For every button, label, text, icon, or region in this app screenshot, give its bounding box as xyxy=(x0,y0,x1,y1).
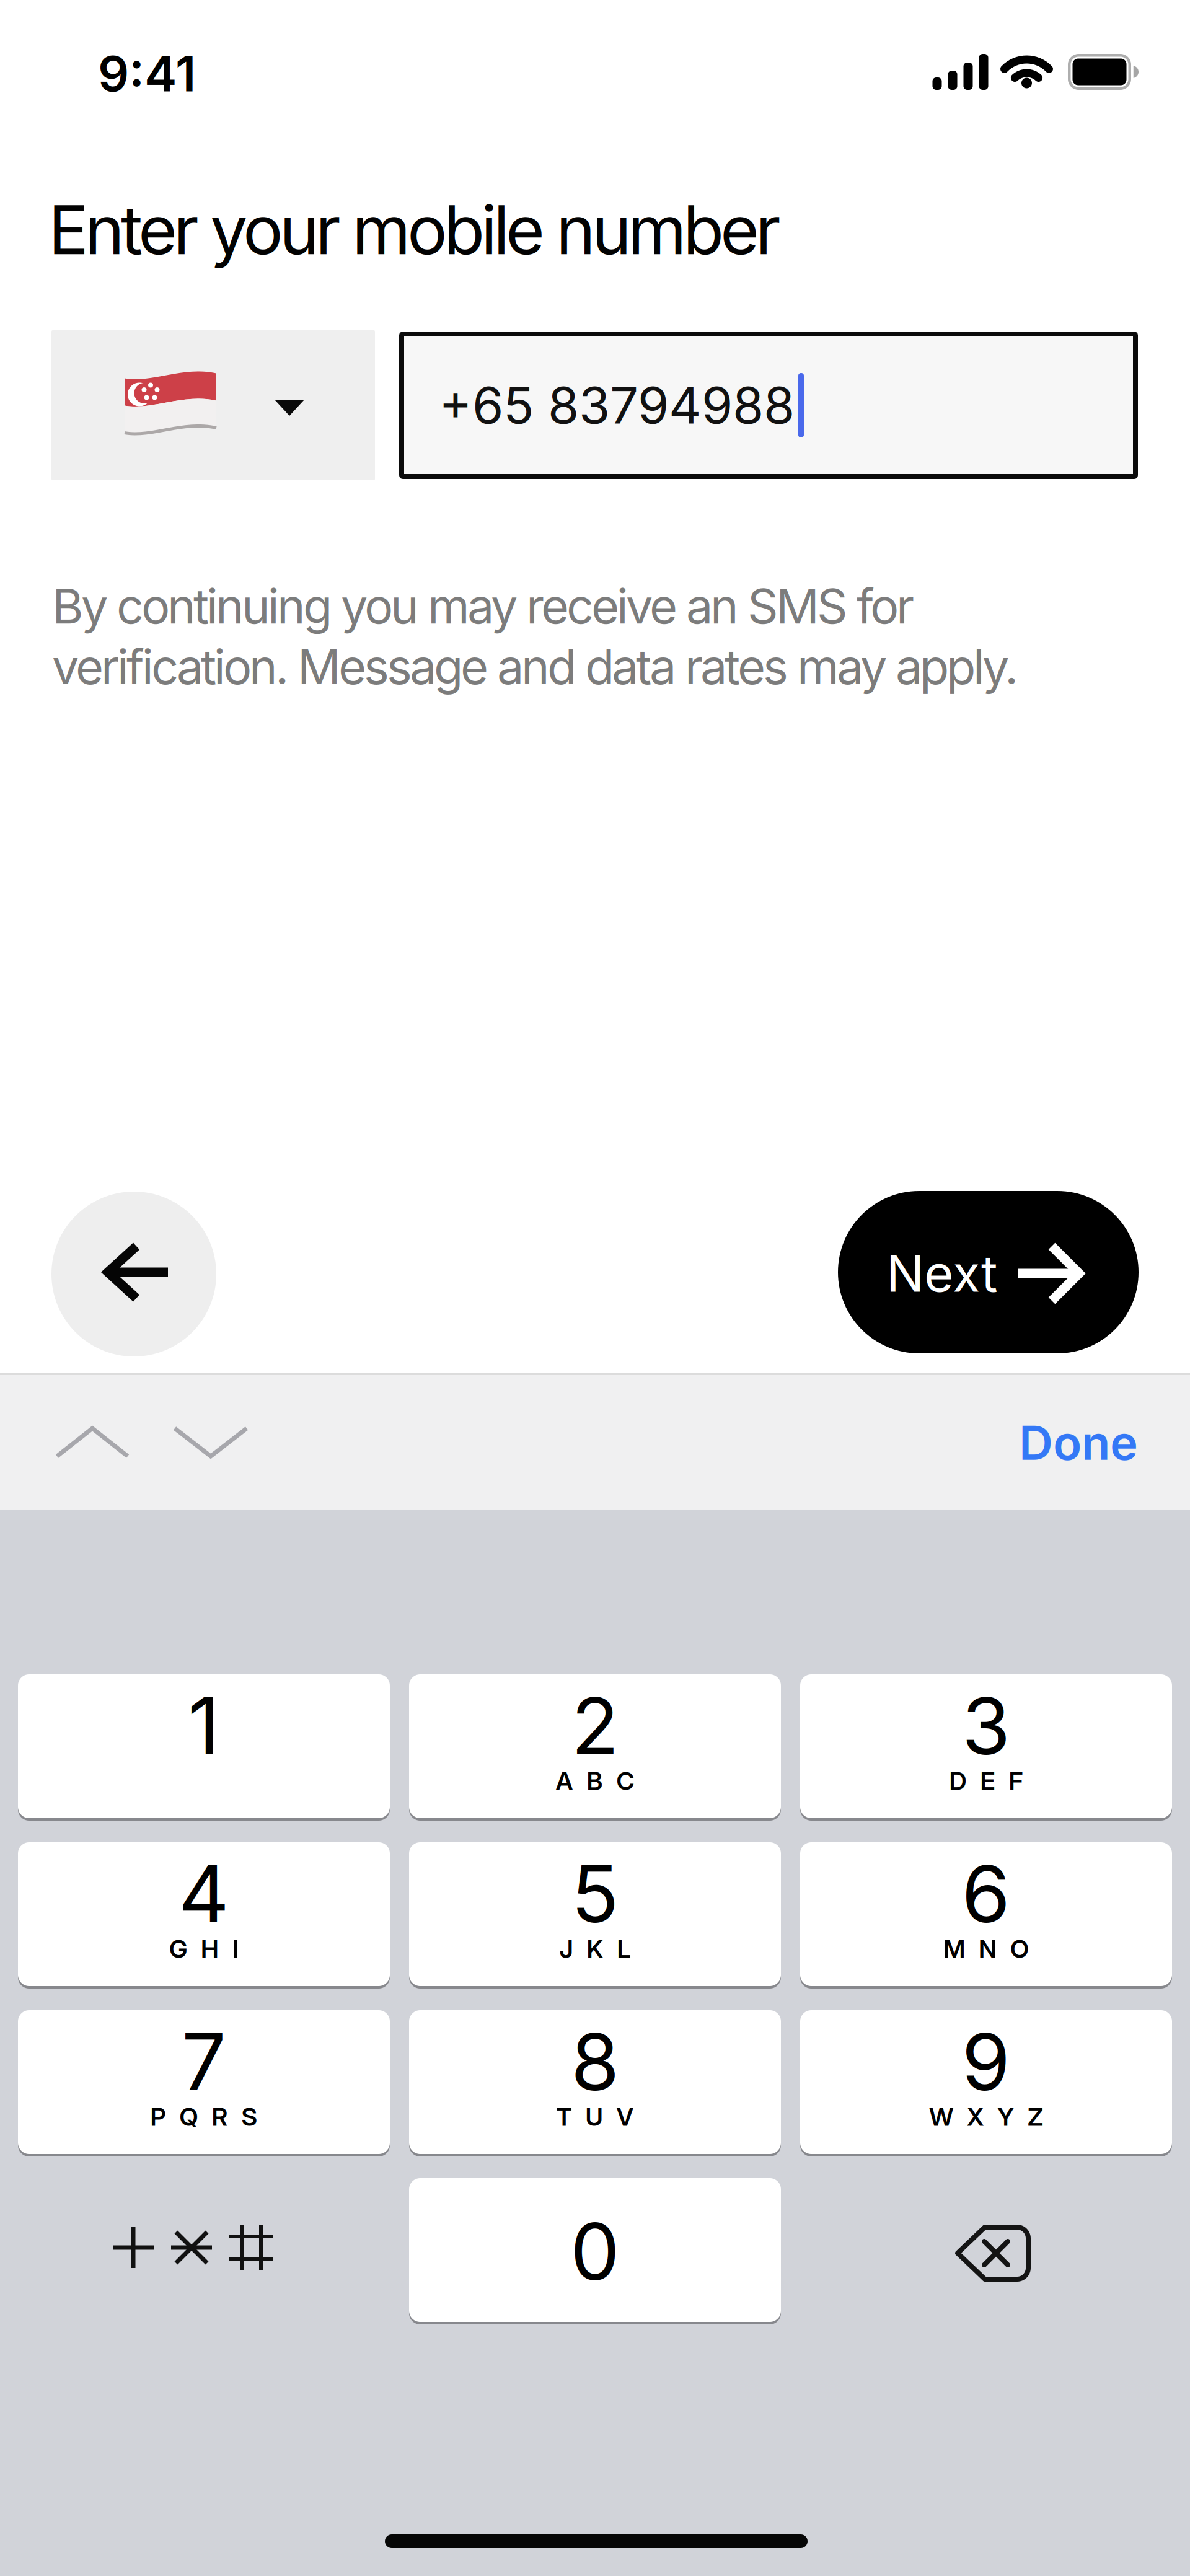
staticText: MNO xyxy=(943,1934,1029,1964)
staticText: 5 xyxy=(571,1846,619,1941)
staticText: 2 xyxy=(571,1678,619,1773)
staticText: +65 83794988 xyxy=(439,375,795,436)
button[interactable]: 2 xyxy=(409,1674,781,1821)
staticText: TUV xyxy=(556,2102,634,2132)
button[interactable] xyxy=(52,1423,133,1461)
staticText: Next xyxy=(886,1243,998,1304)
button[interactable]: +65 83794988 xyxy=(399,332,1138,479)
button[interactable]: 6 xyxy=(800,1842,1172,1989)
button[interactable]: 5 xyxy=(409,1842,781,1989)
staticText: 4 xyxy=(178,1846,229,1941)
staticText: 6 xyxy=(962,1846,1011,1941)
button[interactable] xyxy=(51,330,375,480)
staticText: Done xyxy=(1019,1414,1138,1471)
button[interactable]: 7 xyxy=(18,2010,390,2156)
button[interactable]: 8 xyxy=(409,2010,781,2156)
staticText: JKL xyxy=(559,1934,631,1964)
button[interactable]: Done xyxy=(890,1414,1138,1471)
button[interactable]: 3 xyxy=(800,1674,1172,1821)
button[interactable]: 4 xyxy=(18,1842,390,1989)
staticText: 9 xyxy=(962,2014,1011,2109)
staticText: By continuing you may receive an SMS for… xyxy=(52,577,1018,696)
button[interactable]: 0 xyxy=(409,2178,781,2324)
staticText: WXYZ xyxy=(929,2102,1043,2132)
button[interactable] xyxy=(51,1192,216,1356)
staticText: 3 xyxy=(962,1678,1010,1773)
staticText: PQRS xyxy=(150,2102,258,2132)
button[interactable]: 1 xyxy=(18,1674,390,1821)
button[interactable]: 9 xyxy=(800,2010,1172,2156)
staticText: DEF xyxy=(949,1766,1023,1796)
button[interactable]: Next xyxy=(838,1191,1139,1353)
staticText: 7 xyxy=(182,2014,226,2109)
staticText: Enter your mobile number xyxy=(48,189,781,270)
button[interactable] xyxy=(958,2227,1029,2280)
staticText: 1 xyxy=(188,1678,220,1773)
button[interactable] xyxy=(170,1423,252,1461)
staticText: 8 xyxy=(571,2014,619,2109)
button[interactable] xyxy=(92,2227,303,2289)
staticText: ABC xyxy=(556,1766,634,1796)
staticText: GHI xyxy=(169,1934,239,1964)
staticText: 0 xyxy=(570,2204,620,2299)
staticText: 9:41 xyxy=(98,44,196,103)
